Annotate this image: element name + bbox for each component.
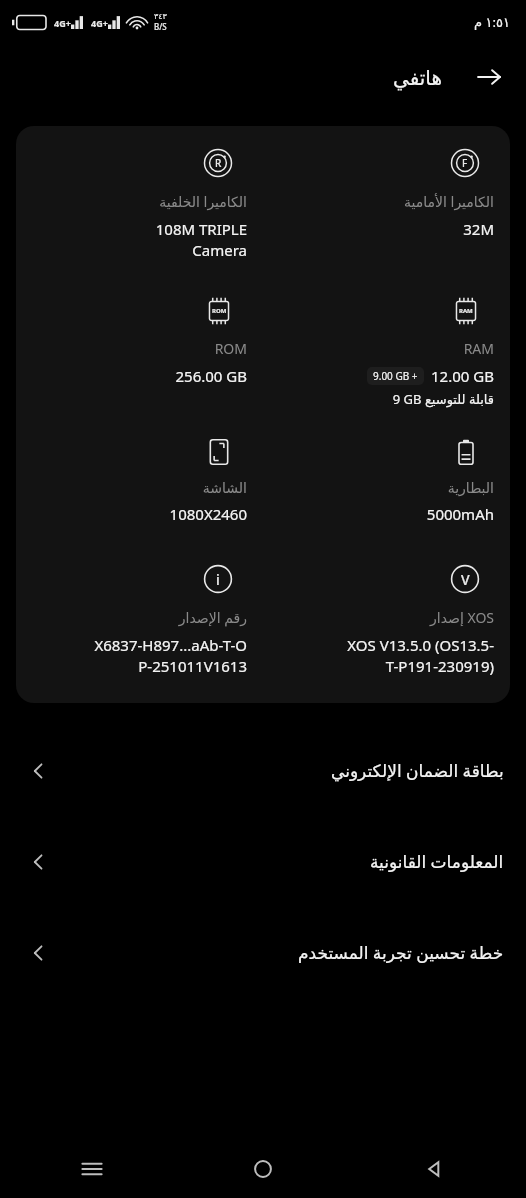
button[interactable]: المعلومات القانونية (0, 816, 526, 907)
staticText: 9.00 GB + (373, 369, 418, 383)
staticText: R (215, 156, 222, 170)
staticText: 5000mAh (426, 504, 494, 524)
staticText: خطة تحسين تجربة المستخدم (298, 941, 504, 964)
staticText: 32M (463, 219, 494, 239)
staticText: RAM (459, 307, 473, 315)
staticText: رقم الإصدار (178, 608, 247, 627)
staticText: الكاميرا الخلفية (159, 192, 247, 211)
button[interactable]: بطاقة الضمان الإلكتروني (0, 725, 526, 816)
button[interactable]: رجوع (407, 1142, 461, 1196)
staticText: X6837-H897...aAb-T-O P-251011V1613 (94, 635, 247, 677)
staticText: ROM (212, 307, 227, 315)
staticText: i (216, 570, 220, 589)
staticText: 12.00 GB (431, 366, 494, 386)
staticText: F (462, 156, 468, 170)
staticText: بطاقة الضمان الإلكتروني (331, 759, 504, 782)
staticText: الكاميرا الأمامية (404, 192, 494, 211)
staticText: ROM (214, 339, 247, 358)
staticText: B/S (154, 21, 167, 32)
button[interactable]: رجوع (468, 56, 510, 98)
staticText: المعلومات القانونية (370, 850, 504, 873)
staticText: 108M TRIPLE Camera (155, 219, 247, 261)
staticText: 4G+ (91, 17, 108, 29)
staticText: 4G+ (54, 17, 71, 29)
staticText: 256.00 GB (175, 366, 247, 386)
staticText: الشاشة (202, 480, 247, 496)
staticText: ٣٤٣ (154, 12, 167, 21)
staticText: البطارية (447, 480, 494, 496)
button[interactable]: خطة تحسين تجربة المستخدم (0, 907, 526, 998)
staticText: هاتفي (393, 66, 442, 89)
staticText: 1080X2460 (169, 504, 247, 524)
button[interactable]: الرئيسية (236, 1142, 290, 1196)
staticText: إصدار XOS (430, 608, 494, 627)
staticText: RAM (463, 339, 494, 358)
staticText: XOS V13.5.0 (OS13.5- T-P191-230919) (347, 635, 494, 677)
staticText: ١:٥١ م (474, 13, 510, 31)
staticText: V (461, 570, 470, 589)
button[interactable]: قائمة (65, 1142, 119, 1196)
staticText: 9 GB قابلة للتوسيع (392, 390, 494, 408)
